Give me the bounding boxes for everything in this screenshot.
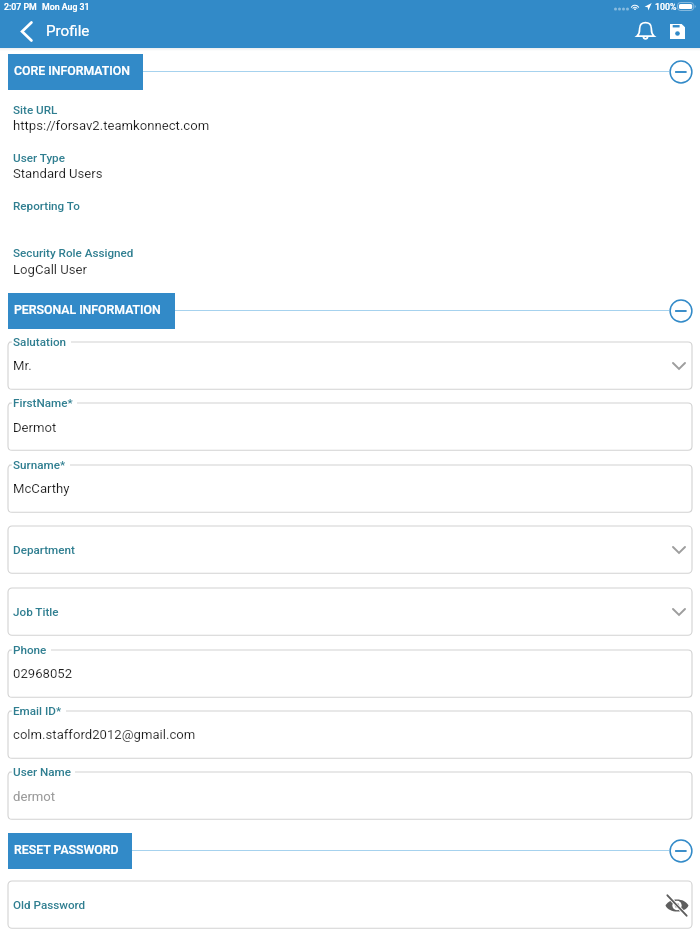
staticText: Surname* — [13, 458, 66, 472]
staticText: Reporting To — [13, 199, 80, 213]
staticText: Old Password — [13, 898, 86, 912]
button[interactable] — [8, 650, 692, 697]
button[interactable]: Collapse RESET PASSWORD — [669, 839, 693, 863]
button[interactable] — [8, 711, 692, 758]
staticText: 100% — [655, 2, 677, 12]
staticText: 2:07 PM — [4, 2, 37, 12]
button[interactable]: RESET PASSWORD — [8, 833, 132, 869]
button[interactable]: Back — [10, 17, 42, 45]
button[interactable] — [8, 526, 692, 573]
staticText: Site URL — [13, 103, 58, 117]
staticText: LogCall User — [13, 262, 88, 277]
staticText: Job Title — [13, 605, 59, 619]
button[interactable] — [8, 342, 692, 389]
button[interactable]: Collapse PERSONAL INFORMATION — [669, 299, 693, 323]
staticText: colm.stafford2012@gmail.com — [13, 727, 196, 742]
staticText: Email ID* — [13, 704, 62, 718]
staticText: Department — [13, 543, 75, 557]
button[interactable] — [0, 96, 700, 141]
button[interactable] — [8, 588, 692, 635]
button[interactable]: Show password — [661, 889, 693, 921]
staticText: Phone — [13, 643, 47, 657]
staticText: CORE INFORMATION — [14, 64, 130, 78]
button[interactable]: Open Job Title list — [663, 596, 695, 628]
button[interactable] — [0, 192, 700, 237]
staticText: Profile — [46, 22, 90, 40]
staticText: RESET PASSWORD — [14, 843, 119, 857]
button[interactable]: Save — [660, 17, 694, 45]
button[interactable] — [8, 403, 692, 450]
button[interactable]: Notifications — [628, 16, 662, 44]
button[interactable]: PERSONAL INFORMATION — [8, 293, 175, 329]
staticText: Security Role Assigned — [13, 246, 134, 260]
staticText: Standard Users — [13, 166, 103, 181]
button[interactable] — [8, 881, 692, 928]
button[interactable] — [0, 144, 700, 189]
staticText: PERSONAL INFORMATION — [14, 303, 161, 317]
button[interactable]: Open Department list — [663, 534, 695, 566]
staticText: dermot — [13, 789, 56, 804]
staticText: https://forsav2.teamkonnect.com — [13, 118, 210, 133]
staticText: Salutation — [13, 335, 67, 349]
staticText: McCarthy — [13, 481, 70, 496]
staticText: FirstName* — [13, 396, 73, 410]
button[interactable]: Collapse CORE INFORMATION — [669, 60, 693, 84]
staticText: 02968052 — [13, 666, 73, 681]
button[interactable] — [8, 465, 692, 512]
staticText: User Type — [13, 151, 65, 165]
button[interactable]: Open Salutation list — [663, 350, 695, 382]
button[interactable] — [0, 240, 700, 285]
button[interactable]: CORE INFORMATION — [8, 54, 143, 90]
staticText: User Name — [13, 765, 71, 779]
staticText: Mr. — [13, 358, 32, 373]
staticText: Dermot — [13, 420, 57, 435]
staticText: Mon Aug 31 — [42, 2, 90, 12]
button[interactable] — [8, 772, 692, 819]
